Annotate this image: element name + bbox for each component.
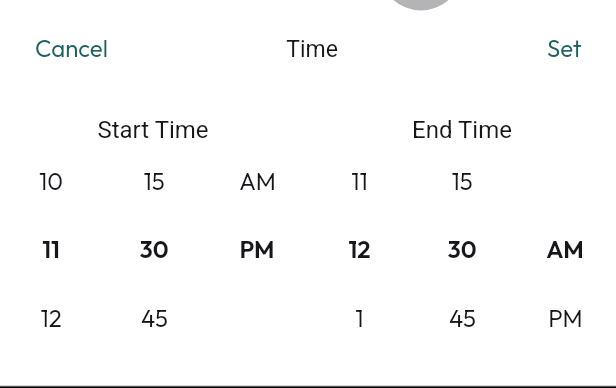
staticText: PM — [239, 234, 275, 264]
staticText: 30 — [139, 234, 169, 264]
staticText: Time — [286, 36, 338, 63]
button[interactable] — [307, 214, 410, 283]
staticText: Set — [547, 33, 582, 63]
button[interactable] — [513, 214, 616, 283]
button[interactable] — [410, 146, 513, 214]
staticText: AM — [546, 234, 584, 264]
staticText: AM — [239, 166, 276, 196]
button[interactable] — [102, 283, 204, 352]
button[interactable] — [102, 214, 204, 283]
staticText: 1 — [355, 303, 364, 333]
staticText: 45 — [449, 303, 476, 333]
button[interactable] — [102, 146, 204, 214]
staticText: 12 — [348, 234, 371, 264]
button[interactable] — [0, 283, 102, 352]
button[interactable] — [204, 214, 307, 283]
staticText: PM — [548, 303, 583, 333]
staticText: 15 — [143, 166, 165, 196]
staticText: 10 — [39, 166, 63, 196]
button[interactable] — [307, 283, 410, 352]
button[interactable] — [410, 214, 513, 283]
staticText: End Time — [412, 116, 512, 144]
button[interactable] — [204, 146, 307, 214]
staticText: 12 — [40, 303, 62, 333]
button[interactable] — [307, 146, 410, 214]
staticText: Start Time — [97, 116, 209, 144]
button[interactable] — [410, 283, 513, 352]
staticText: 45 — [141, 303, 168, 333]
button[interactable]: Set — [531, 23, 598, 72]
button[interactable] — [513, 283, 616, 352]
button[interactable] — [0, 214, 102, 283]
staticText: 15 — [451, 166, 473, 196]
staticText: 30 — [447, 234, 477, 264]
button[interactable] — [0, 146, 102, 214]
staticText: 11 — [42, 234, 60, 264]
button[interactable]: Cancel — [18, 23, 124, 72]
staticText: Cancel — [35, 33, 108, 63]
staticText: 11 — [351, 166, 368, 196]
